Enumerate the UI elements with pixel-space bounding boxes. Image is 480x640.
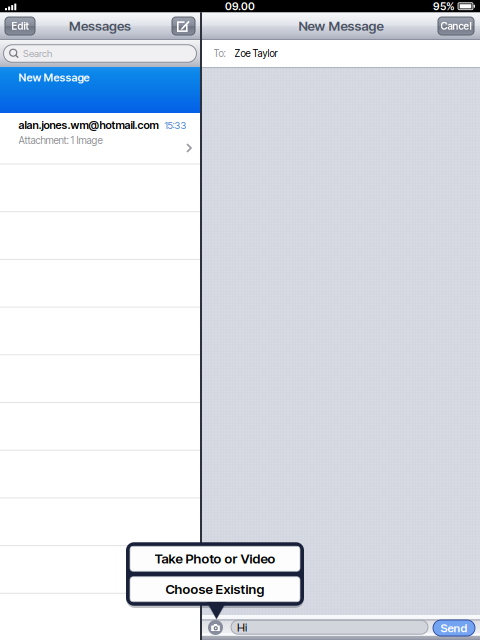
staticText: 15:33 — [164, 120, 186, 131]
staticText: alan.jones.wm@hotmail.com — [18, 118, 158, 132]
button[interactable]: Send — [433, 620, 475, 636]
staticText: 09.00 — [225, 0, 255, 13]
staticText: Take Photo or Video — [154, 551, 275, 567]
staticText: Hi — [237, 620, 247, 634]
button[interactable]: Edit — [5, 17, 35, 35]
staticText: Zoe Taylor — [234, 48, 277, 59]
staticText: Messages — [69, 18, 131, 34]
staticText: 95% — [433, 0, 455, 13]
button[interactable]: Cancel — [438, 17, 474, 35]
button[interactable]: To: — [202, 40, 480, 67]
staticText: Search — [23, 48, 52, 59]
staticText: Edit — [11, 20, 28, 32]
staticText: New Message — [298, 18, 383, 34]
staticText: New Message — [18, 71, 89, 84]
staticText: Cancel — [440, 20, 471, 32]
button[interactable]: New Message — [0, 67, 200, 113]
staticText: To: — [213, 48, 225, 59]
button[interactable]: Compose — [172, 17, 195, 35]
button[interactable]: Attach photo — [208, 620, 223, 635]
button[interactable]: alan.jones.wm@hotmail.com — [0, 113, 200, 163]
button[interactable]: Take Photo or Video — [130, 546, 300, 571]
staticText: Attachment: 1 Image — [18, 134, 102, 146]
button[interactable]: Search — [3, 45, 196, 62]
staticText: Send — [440, 621, 467, 635]
button[interactable]: Choose Existing — [130, 577, 300, 602]
staticText: Choose Existing — [165, 581, 264, 597]
